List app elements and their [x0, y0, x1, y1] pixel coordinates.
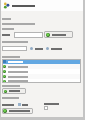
button[interactable]: [2, 88, 26, 94]
button[interactable]: [2, 59, 81, 64]
button[interactable]: [2, 79, 81, 83]
button[interactable]: [46, 46, 62, 51]
button[interactable]: [44, 31, 73, 38]
button[interactable]: [2, 74, 81, 79]
button[interactable]: [2, 108, 33, 114]
button[interactable]: [30, 46, 43, 51]
button[interactable]: Checkbox: [44, 106, 48, 110]
button[interactable]: [2, 64, 81, 69]
button[interactable]: [2, 69, 81, 74]
